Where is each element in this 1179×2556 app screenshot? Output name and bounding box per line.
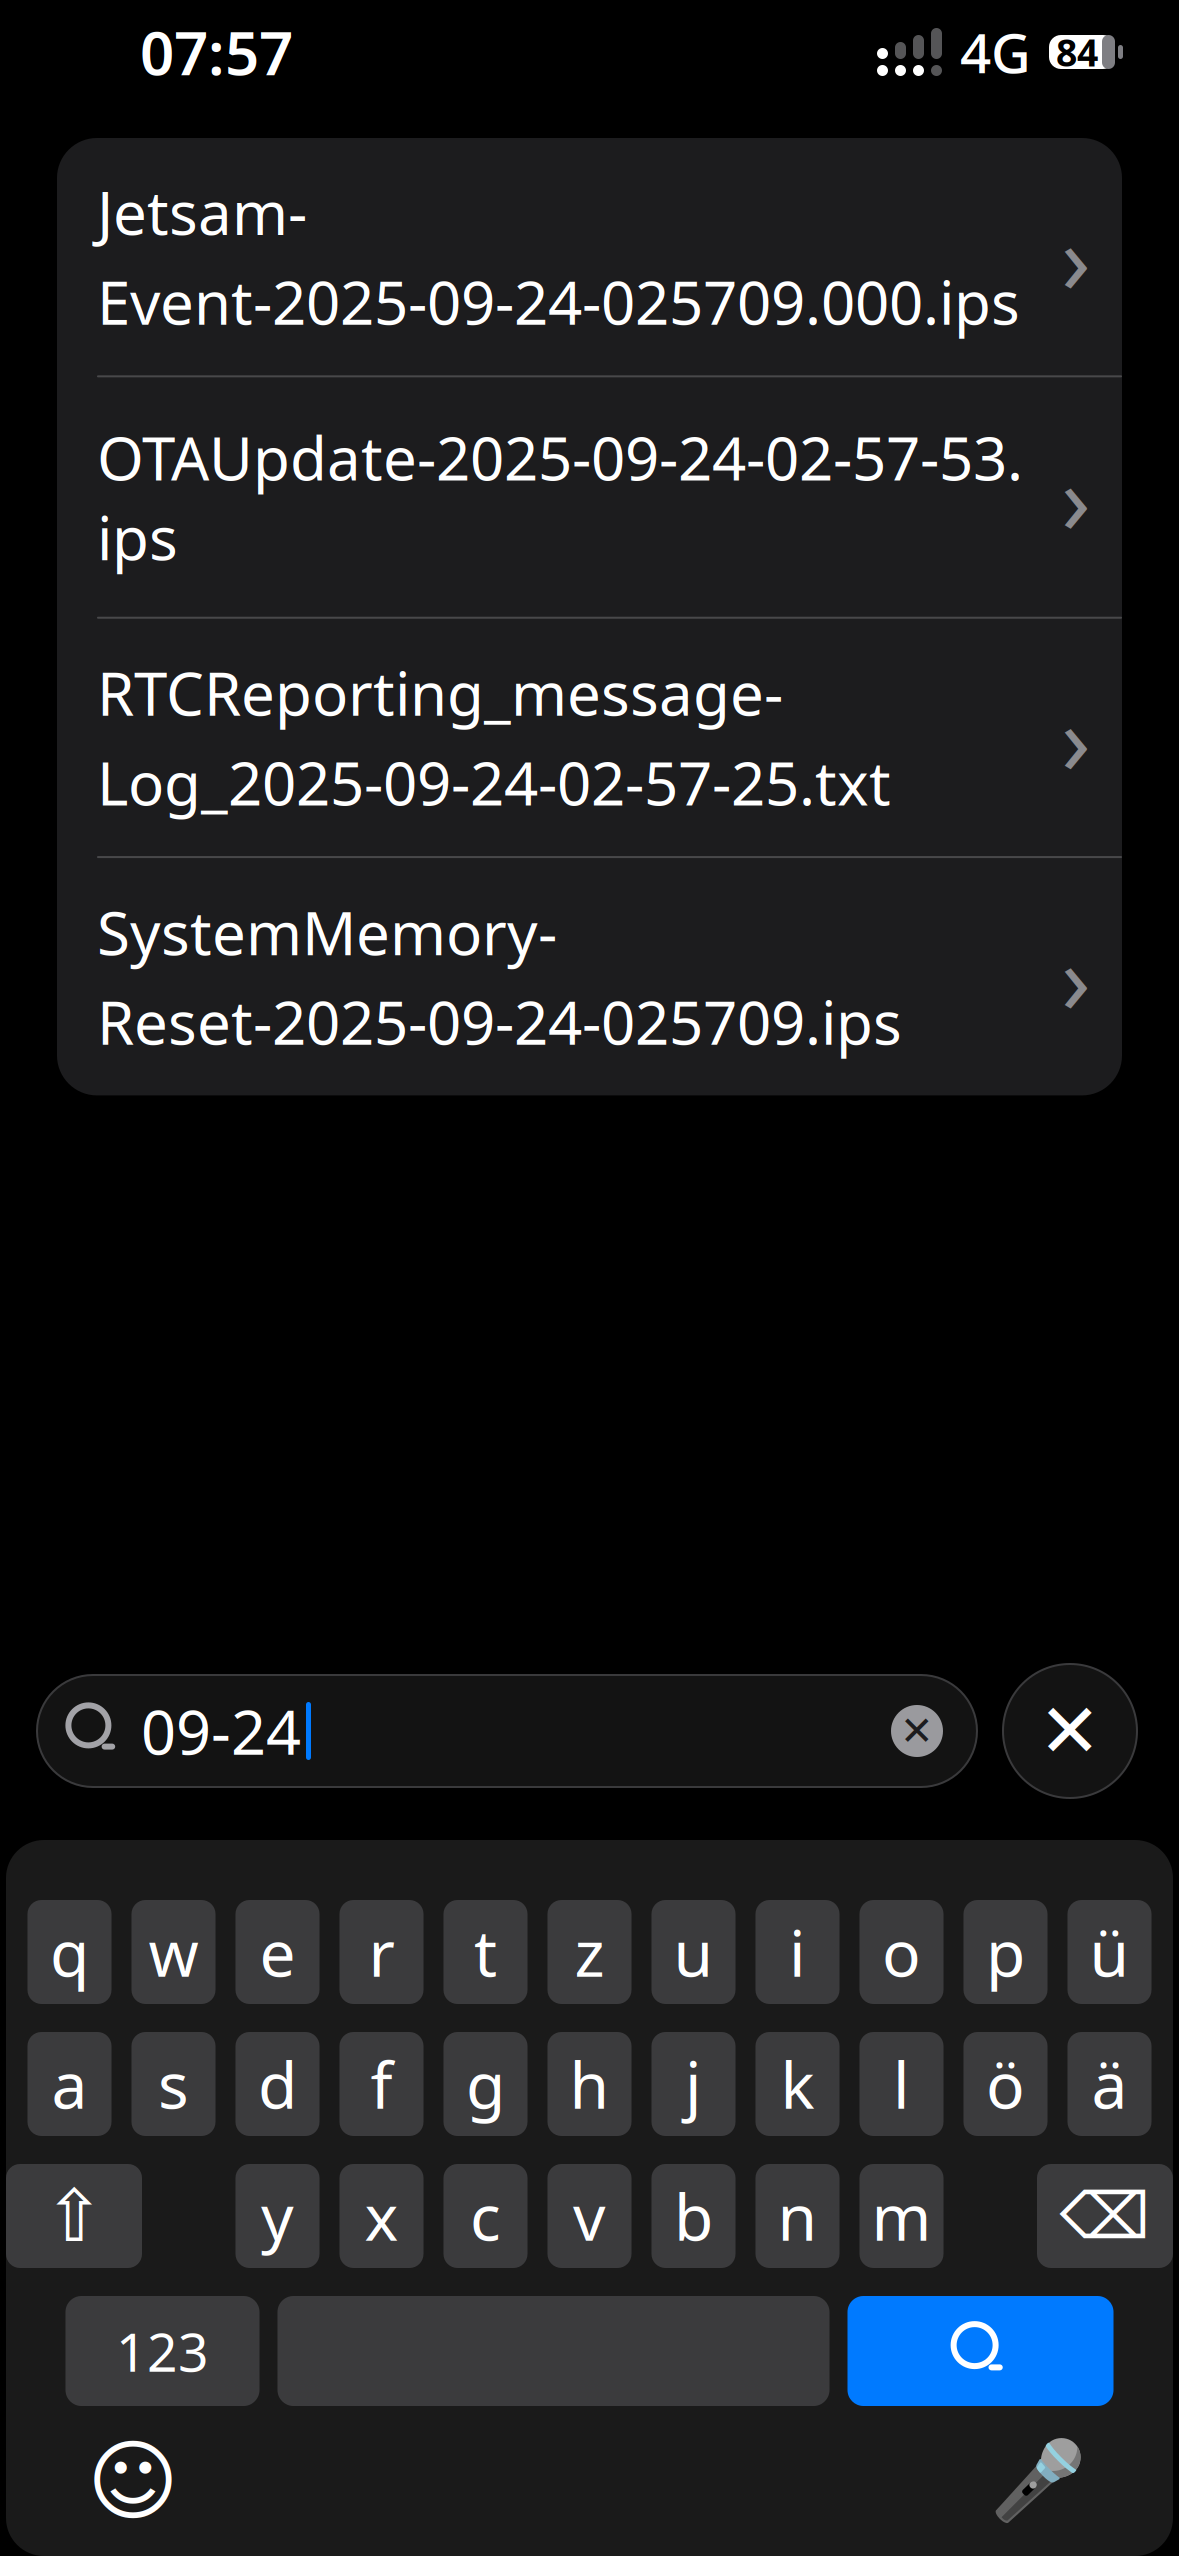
button[interactable]: h [547,2032,631,2136]
staticText: 123 [116,2316,209,2386]
button[interactable]: c [443,2164,527,2268]
button[interactable]: Emoji keyboard [90,2438,176,2524]
staticText: g [466,2041,505,2126]
staticText: r [368,1909,394,1994]
button[interactable]: RTCReporting_message- [57,619,1122,856]
staticText: Log_2025-09-24-02-57-25.txt [97,742,891,822]
staticText: ☺ [87,2431,179,2531]
staticText: v [573,2173,606,2258]
button[interactable]: l [859,2032,943,2136]
button[interactable]: y [235,2164,319,2268]
button[interactable]: a [27,2032,111,2136]
staticText: 🎤 [990,2437,1086,2525]
button[interactable]: Backspace [1037,2164,1173,2268]
staticText: ä [1091,2041,1127,2126]
staticText: 09-24 [141,1690,301,1772]
button[interactable]: Dictate [995,2438,1081,2524]
staticText: t [474,1909,497,1994]
button[interactable]: n [755,2164,839,2268]
staticText: s [158,2041,189,2126]
staticText: x [364,2173,398,2258]
button[interactable]: j [651,2032,735,2136]
button[interactable]: m [859,2164,943,2268]
button[interactable]: r [339,1900,423,2004]
button[interactable]: f [339,2032,423,2136]
button[interactable]: Shift [6,2164,142,2268]
staticText: d [258,2041,297,2126]
staticText: l [893,2041,910,2126]
staticText: n [777,2173,817,2258]
button[interactable]: v [547,2164,631,2268]
button[interactable]: ö [963,2032,1047,2136]
staticText: f [370,2041,392,2126]
staticText: Reset-2025-09-24-025709.ips [97,982,902,1061]
staticText: › [1061,913,1091,1040]
staticText: b [674,2173,713,2258]
staticText: w [148,1909,198,1994]
button[interactable]: SystemMemory- [57,858,1122,1095]
staticText: Event-2025-09-24-025709.000.ips [97,262,1020,341]
staticText: ✕ [1038,1689,1101,1773]
staticText: z [574,1909,604,1994]
button[interactable]: q [27,1900,111,2004]
button[interactable]: z [547,1900,631,2004]
button[interactable]: b [651,2164,735,2268]
button[interactable]: p [963,1900,1047,2004]
staticText: q [50,1909,89,1994]
staticText: › [1061,674,1091,801]
staticText: OTAUpdate-2025-09-24-02-57-53.ips [97,417,1023,577]
button[interactable]: e [235,1900,319,2004]
staticText: u [673,1909,713,1994]
staticText: 4G [960,16,1031,88]
staticText: e [259,1909,295,1994]
button[interactable]: o [859,1900,943,2004]
button[interactable]: i [755,1900,839,2004]
staticText: c [470,2173,501,2258]
staticText: k [780,2041,814,2126]
button[interactable]: Numbers [65,2296,259,2406]
staticText: h [569,2041,609,2126]
staticText: 84 [1056,27,1098,77]
button[interactable]: k [755,2032,839,2136]
staticText: ü [1089,1909,1129,1994]
button[interactable]: s [131,2032,215,2136]
staticText: › [1061,193,1091,320]
staticText: i [789,1909,806,1994]
staticText: ✕ [900,1708,934,1754]
staticText: SystemMemory- [97,892,557,972]
staticText: m [871,2173,931,2258]
staticText: j [685,2041,702,2126]
staticText: o [882,1909,921,1994]
button[interactable]: w [131,1900,215,2004]
staticText: › [1061,433,1091,561]
button[interactable]: OTAUpdate-2025-09-24-02-57-53.ips [57,377,1122,617]
staticText: RTCReporting_message- [97,653,783,732]
staticText: ⇧ [44,2175,104,2257]
staticText: ö [986,2041,1025,2126]
staticText: 07:57 [140,12,293,92]
button[interactable]: ä [1067,2032,1151,2136]
staticText: a [51,2041,87,2126]
button[interactable]: d [235,2032,319,2136]
staticText: p [986,1909,1025,1994]
button[interactable]: Clear text [891,1705,943,1757]
staticText: y [261,2173,294,2258]
staticText: Jetsam- [97,172,307,252]
button[interactable]: t [443,1900,527,2004]
button[interactable]: u [651,1900,735,2004]
button[interactable]: Jetsam- [57,138,1122,375]
button[interactable]: g [443,2032,527,2136]
staticText: ⌫ [1059,2180,1150,2252]
button[interactable]: x [339,2164,423,2268]
button[interactable]: Close search [1003,1664,1137,1798]
button[interactable]: Search [847,2296,1113,2406]
button[interactable]: ü [1067,1900,1151,2004]
